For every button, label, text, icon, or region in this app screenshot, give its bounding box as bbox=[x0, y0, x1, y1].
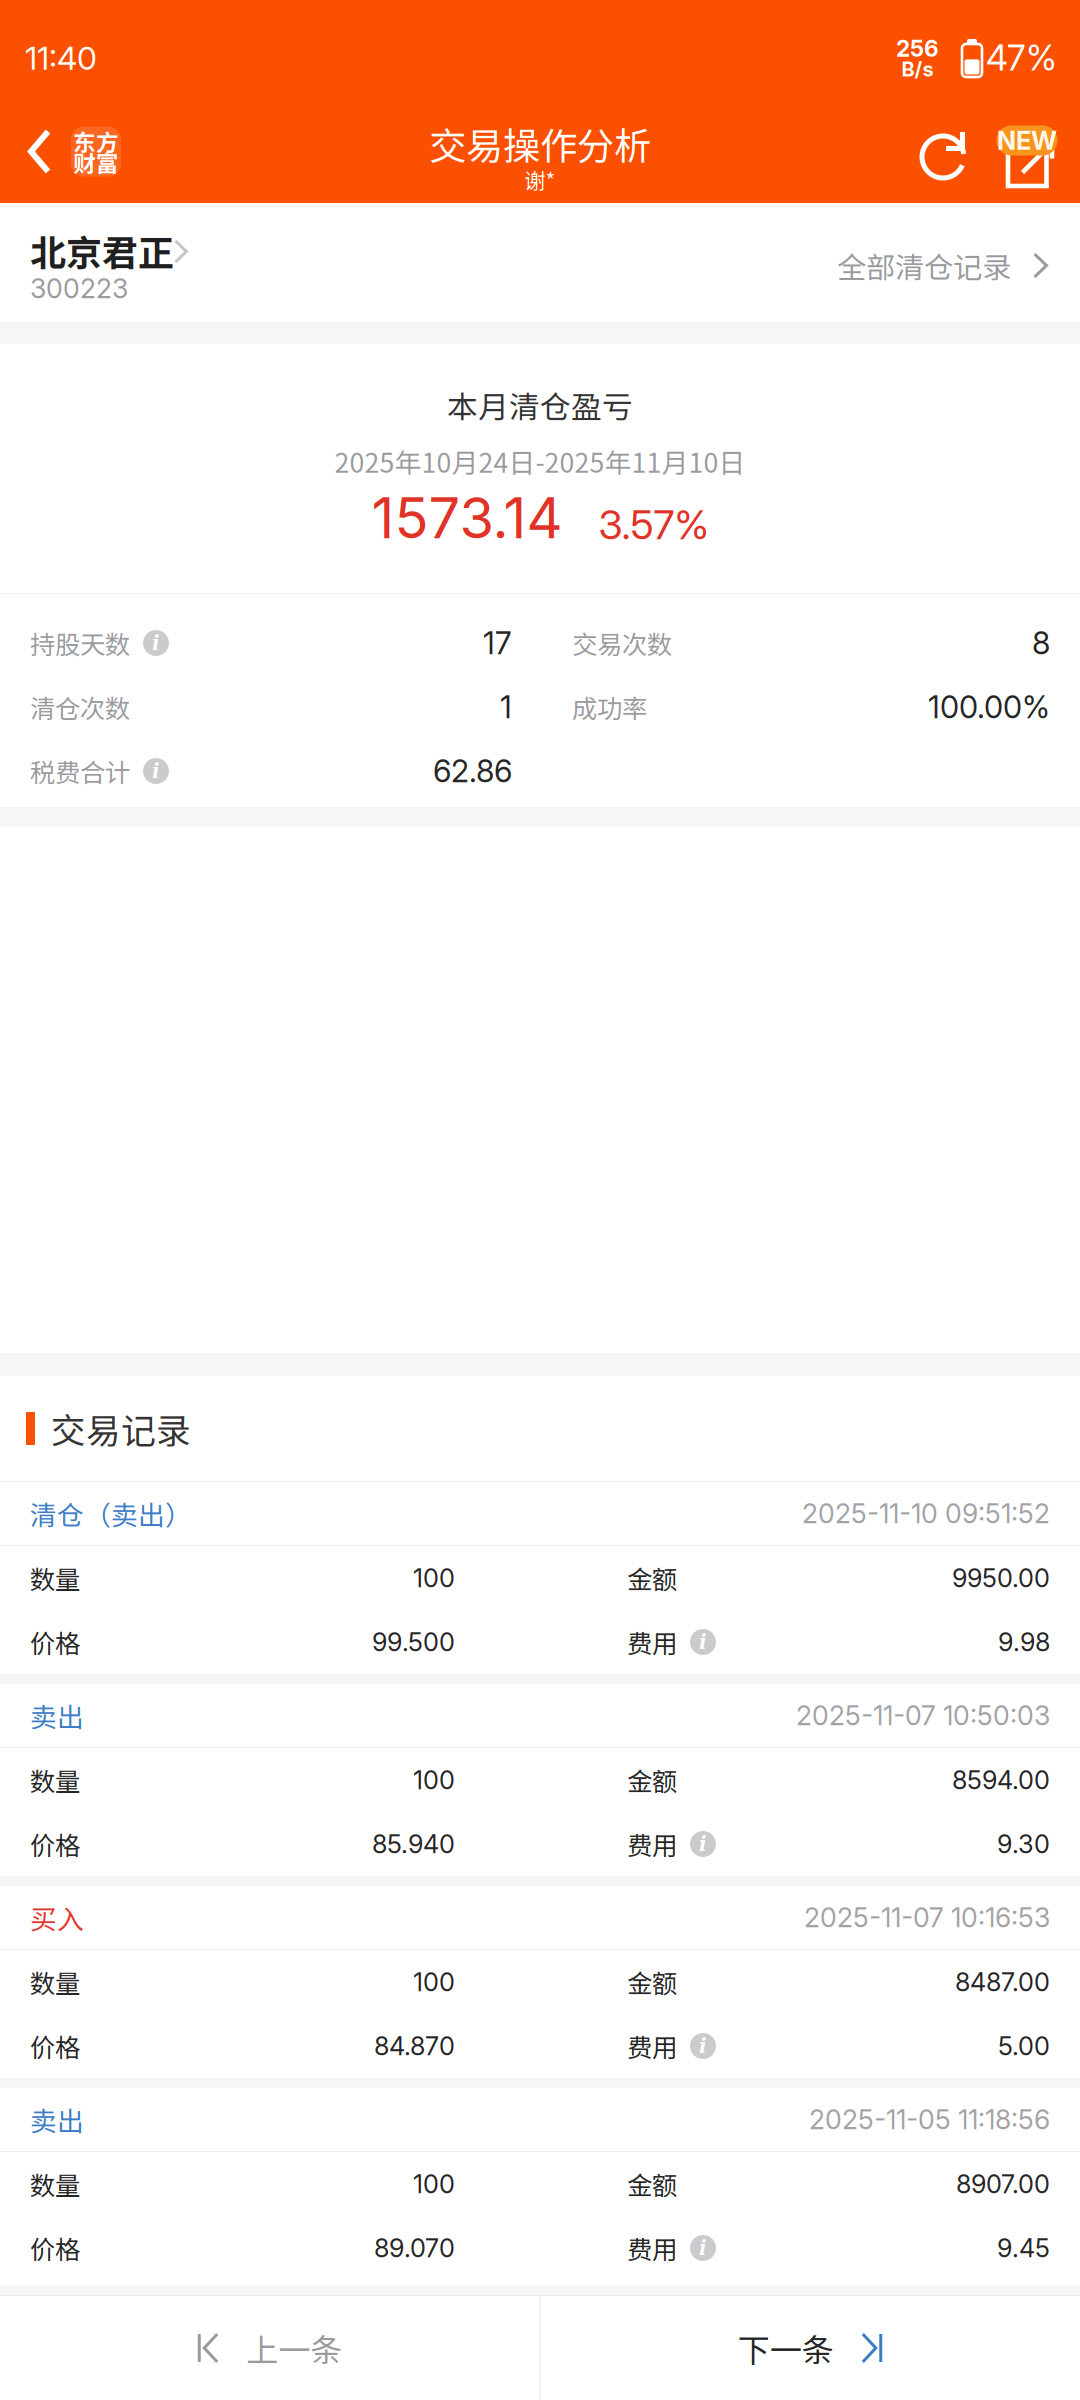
staticText: 8907.00 bbox=[956, 2169, 1050, 2199]
staticText: B/s bbox=[901, 57, 933, 81]
staticText: 交易次数 bbox=[572, 625, 672, 661]
staticText: i bbox=[152, 631, 160, 655]
staticText: 85.940 bbox=[372, 1829, 455, 1859]
button[interactable]: 上一条 bbox=[0, 2296, 539, 2400]
staticText: 2025-11-07 10:16:53 bbox=[804, 1901, 1050, 1934]
staticText: 9.45 bbox=[997, 2233, 1050, 2263]
staticText: 价格 bbox=[30, 1826, 80, 1862]
staticText: 卖出 bbox=[30, 1696, 84, 1735]
staticText: 金额 bbox=[627, 1560, 677, 1596]
staticText: 数量 bbox=[30, 1964, 80, 2000]
staticText: 62.86 bbox=[433, 752, 512, 789]
staticText: 8594.00 bbox=[952, 1765, 1050, 1795]
button[interactable]: 全部清仓记录 bbox=[837, 218, 1048, 307]
staticText: 费用 bbox=[627, 1624, 677, 1660]
staticText: 清仓次数 bbox=[30, 689, 130, 725]
staticText: 全部清仓记录 bbox=[837, 244, 1011, 287]
staticText: 清仓（卖出） bbox=[30, 1494, 192, 1533]
staticText: i bbox=[699, 1832, 707, 1856]
staticText: 谢* bbox=[524, 164, 555, 195]
staticText: 5.00 bbox=[998, 2031, 1050, 2061]
staticText: 财富 bbox=[73, 146, 119, 178]
staticText: 47% bbox=[986, 37, 1057, 79]
staticText: 9950.00 bbox=[952, 1563, 1050, 1593]
staticText: 本月清仓盈亏 bbox=[447, 383, 633, 427]
staticText: 费用 bbox=[627, 2028, 677, 2064]
staticText: 9.30 bbox=[997, 1829, 1050, 1859]
staticText: 8487.00 bbox=[955, 1967, 1050, 1997]
staticText: 数量 bbox=[30, 1560, 80, 1596]
staticText: 北京君正 bbox=[30, 224, 174, 276]
button[interactable]: Refresh bbox=[909, 100, 977, 203]
staticText: 2025-11-07 10:50:03 bbox=[796, 1699, 1050, 1732]
staticText: 费用 bbox=[627, 2230, 677, 2266]
staticText: i bbox=[699, 1630, 707, 1654]
staticText: 费用 bbox=[627, 1826, 677, 1862]
staticText: 金额 bbox=[627, 1762, 677, 1798]
staticText: 价格 bbox=[30, 1624, 80, 1660]
staticText: 100 bbox=[413, 1967, 455, 1997]
staticText: 99.500 bbox=[372, 1627, 455, 1657]
staticText: 2025年10月24日-2025年11月10日 bbox=[334, 442, 745, 480]
staticText: 价格 bbox=[30, 2028, 80, 2064]
staticText: 256 bbox=[896, 35, 939, 62]
staticText: 100.00% bbox=[928, 688, 1050, 725]
button[interactable]: 北京君正 bbox=[30, 219, 200, 305]
staticText: 1 bbox=[500, 688, 512, 725]
staticText: 100 bbox=[413, 1765, 455, 1795]
staticText: 89.070 bbox=[374, 2233, 455, 2263]
staticText: 卖出 bbox=[30, 2100, 84, 2139]
staticText: 数量 bbox=[30, 1762, 80, 1798]
staticText: i bbox=[699, 2034, 707, 2058]
staticText: 3.57% bbox=[598, 500, 708, 549]
staticText: 300223 bbox=[30, 272, 128, 305]
staticText: 9.98 bbox=[998, 1627, 1050, 1657]
staticText: 买入 bbox=[30, 1898, 84, 1937]
staticText: 交易操作分析 bbox=[429, 116, 651, 171]
staticText: 交易记录 bbox=[51, 1403, 191, 1454]
staticText: 成功率 bbox=[572, 689, 647, 725]
staticText: NEW bbox=[997, 125, 1057, 156]
staticText: 金额 bbox=[627, 2166, 677, 2202]
staticText: 数量 bbox=[30, 2166, 80, 2202]
staticText: 100 bbox=[413, 2169, 455, 2199]
button[interactable]: Back bbox=[0, 100, 129, 203]
staticText: 2025-11-10 09:51:52 bbox=[802, 1497, 1050, 1530]
staticText: i bbox=[699, 2236, 707, 2260]
staticText: 价格 bbox=[30, 2230, 80, 2266]
staticText: 1573.14 bbox=[371, 484, 562, 552]
staticText: 持股天数 bbox=[30, 625, 130, 661]
staticText: 84.870 bbox=[374, 2031, 455, 2061]
staticText: 税费合计 bbox=[30, 753, 130, 789]
staticText: 11:40 bbox=[25, 39, 97, 77]
button[interactable]: 下一条 bbox=[540, 2296, 1080, 2400]
staticText: 金额 bbox=[627, 1964, 677, 2000]
staticText: i bbox=[152, 759, 160, 783]
staticText: 100 bbox=[413, 1563, 455, 1593]
staticText: 上一条 bbox=[246, 2325, 342, 2371]
staticText: 下一条 bbox=[738, 2325, 834, 2371]
staticText: 东方 bbox=[73, 125, 119, 157]
staticText: 17 bbox=[483, 624, 512, 661]
staticText: 8 bbox=[1032, 624, 1050, 661]
button[interactable]: Share bbox=[977, 100, 1056, 203]
staticText: 2025-11-05 11:18:56 bbox=[809, 2103, 1050, 2136]
